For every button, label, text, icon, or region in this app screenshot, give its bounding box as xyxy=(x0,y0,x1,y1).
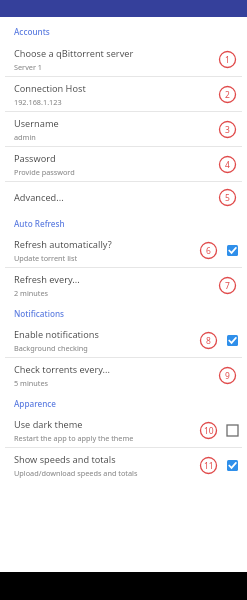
staticText: Choose a qBittorrent server xyxy=(14,47,134,60)
button[interactable]: Disabled checkbox xyxy=(224,422,240,438)
button[interactable]: Show speeds and totals xyxy=(0,448,247,482)
staticText: Update torrent list xyxy=(14,253,78,263)
staticText: Apparence xyxy=(14,398,57,409)
staticText: 2 xyxy=(225,89,230,101)
button[interactable]: Choose a qBittorrent server xyxy=(0,42,247,76)
button[interactable]: Enable notifications xyxy=(0,323,247,357)
button[interactable]: Connection Host xyxy=(0,77,247,111)
staticText: 9 xyxy=(225,370,230,382)
staticText: Upload/download speeds and totals xyxy=(14,468,138,478)
staticText: 10 xyxy=(204,425,214,437)
staticText: 2 minutes xyxy=(14,288,49,298)
staticText: Enable notifications xyxy=(14,328,99,341)
staticText: Refresh automatically? xyxy=(14,238,112,251)
staticText: Auto Refresh xyxy=(14,218,65,229)
staticText: admin xyxy=(14,132,36,142)
button[interactable]: Enabled checkbox xyxy=(224,242,240,258)
button[interactable]: Check torrents every... xyxy=(0,358,247,392)
staticText: 11 xyxy=(204,460,214,472)
staticText: Notifications xyxy=(14,308,64,319)
staticText: Refresh every... xyxy=(14,273,80,286)
button[interactable]: Enabled checkbox xyxy=(224,457,240,473)
button[interactable]: Refresh automatically? xyxy=(0,233,247,267)
button[interactable]: Password xyxy=(0,147,247,181)
staticText: Restart the app to apply the theme xyxy=(14,433,134,443)
staticText: Username xyxy=(14,117,59,130)
staticText: Use dark theme xyxy=(14,418,83,431)
staticText: Connection Host xyxy=(14,82,86,95)
staticText: 4 xyxy=(225,159,230,171)
staticText: Background checking xyxy=(14,343,88,353)
staticText: 6 xyxy=(206,245,211,257)
staticText: 5 minutes xyxy=(14,378,49,388)
button[interactable]: Enabled checkbox xyxy=(224,332,240,348)
staticText: 192.168.1.123 xyxy=(14,97,62,107)
button[interactable]: Username xyxy=(0,112,247,146)
staticText: Show speeds and totals xyxy=(14,453,116,466)
staticText: 8 xyxy=(206,335,211,347)
staticText: Check torrents every... xyxy=(14,363,110,376)
staticText: Provide password xyxy=(14,167,75,177)
staticText: 3 xyxy=(225,124,230,136)
button[interactable]: Refresh every... xyxy=(0,268,247,302)
staticText: Password xyxy=(14,152,56,165)
staticText: 1 xyxy=(225,54,230,66)
button[interactable]: Use dark theme xyxy=(0,413,247,447)
staticText: Accounts xyxy=(14,26,50,37)
staticText: 5 xyxy=(225,192,230,204)
staticText: Server 1 xyxy=(14,62,43,72)
staticText: Advanced... xyxy=(14,191,64,204)
button[interactable]: Advanced... xyxy=(0,182,247,212)
staticText: 7 xyxy=(225,280,230,292)
